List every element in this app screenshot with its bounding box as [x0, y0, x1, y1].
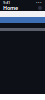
- staticText: Home: [3, 4, 18, 12]
- staticText: •••: [36, 0, 42, 5]
- staticText: 9:41: [3, 0, 10, 5]
